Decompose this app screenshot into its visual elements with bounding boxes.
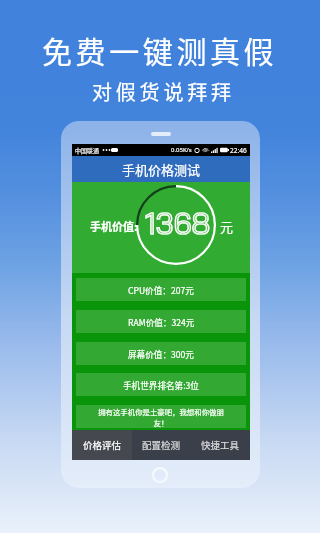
staticText: 免费一键测真假 xyxy=(42,28,278,71)
button[interactable]: 拥有这手机你是土豪吧，我想和你做朋 友！ xyxy=(76,405,246,428)
staticText: 22:46 xyxy=(230,146,247,155)
staticText: 价格评估 xyxy=(83,438,122,452)
staticText: 元 xyxy=(220,217,234,236)
staticText: 对假货说拜拜 xyxy=(92,77,235,106)
staticText: 0.05K/s xyxy=(171,146,192,154)
button[interactable]: 屏幕价值：300元 xyxy=(76,342,246,365)
staticText: 手机价格测试 xyxy=(122,160,201,179)
button[interactable]: 快捷工具 xyxy=(191,430,250,460)
button[interactable]: RAM价值：324元 xyxy=(76,310,246,333)
staticText: 中国联通 xyxy=(75,146,100,155)
staticText: RAM价值：324元 xyxy=(128,316,195,328)
staticText: 配置检测 xyxy=(142,438,181,452)
staticText: 1368 xyxy=(145,204,211,242)
staticText: CPU价值：207元 xyxy=(128,284,194,296)
staticText: 拥有这手机你是土豪吧，我想和你做朋 友！ xyxy=(98,406,224,428)
button[interactable]: 手机世界排名第:3位 xyxy=(76,373,246,396)
button[interactable]: CPU价值：207元 xyxy=(76,278,246,301)
button[interactable]: 价格评估 xyxy=(72,430,132,460)
staticText: 手机价值: xyxy=(90,218,138,234)
button[interactable]: 配置检测 xyxy=(132,430,191,460)
staticText: 快捷工具 xyxy=(201,438,240,452)
other: Home xyxy=(152,467,168,483)
staticText: 手机世界排名第:3位 xyxy=(123,379,199,391)
staticText: 屏幕价值：300元 xyxy=(128,348,194,360)
